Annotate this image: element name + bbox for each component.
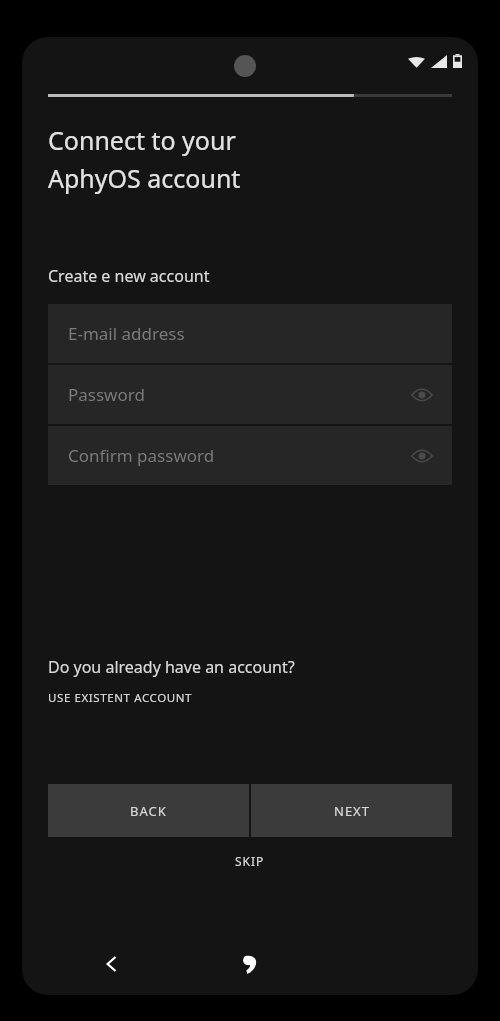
- button[interactable]: E-mail address: [48, 304, 452, 363]
- button[interactable]: NEXT: [251, 784, 452, 837]
- staticText: Password: [68, 383, 145, 406]
- staticText: BACK: [130, 802, 167, 820]
- other: Show password: [406, 440, 438, 472]
- staticText: NEXT: [334, 802, 370, 820]
- staticText: Confirm password: [68, 444, 215, 467]
- staticText: SKIP: [235, 853, 265, 869]
- button[interactable]: Back: [90, 942, 134, 986]
- staticText: USE EXISTENT ACCOUNT: [48, 690, 193, 706]
- staticText: Do you already have an account?: [48, 656, 295, 678]
- staticText: AphyOS account: [48, 161, 241, 195]
- staticText: Connect to your: [48, 123, 236, 157]
- button[interactable]: BACK: [48, 784, 249, 837]
- button[interactable]: Home: [228, 942, 272, 986]
- button[interactable]: Confirm password: [48, 426, 452, 485]
- staticText: E-mail address: [68, 322, 185, 345]
- other: Show password: [406, 379, 438, 411]
- button[interactable]: SKIP: [219, 849, 281, 873]
- button[interactable]: USE EXISTENT ACCOUNT: [48, 690, 193, 706]
- staticText: Create e new account: [48, 265, 210, 287]
- button[interactable]: Password: [48, 365, 452, 424]
